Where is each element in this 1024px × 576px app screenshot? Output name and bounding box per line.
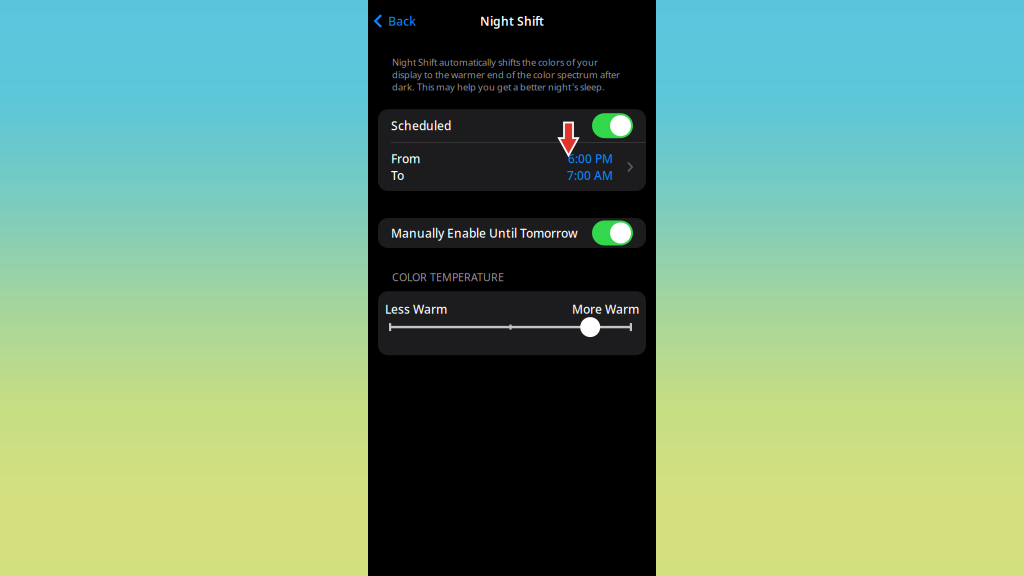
staticText: From: [391, 150, 420, 166]
staticText: Scheduled: [391, 118, 451, 134]
staticText: 7:00 AM: [567, 167, 613, 183]
button[interactable]: Scheduled: [378, 109, 646, 142]
button[interactable]: From: [378, 143, 646, 191]
staticText: COLOR TEMPERATURE: [392, 270, 504, 284]
button[interactable]: Manually Enable Until Tomorrow: [378, 218, 646, 248]
staticText: Manually Enable Until Tomorrow: [391, 225, 578, 241]
staticText: Night Shift: [480, 13, 544, 29]
staticText: Less Warm: [385, 301, 447, 317]
staticText: More Warm: [572, 301, 639, 317]
staticText: Back: [388, 13, 416, 29]
staticText: 6:00 PM: [568, 150, 613, 166]
staticText: To: [391, 167, 404, 183]
button[interactable]: Back: [368, 7, 416, 35]
staticText: Night Shift automatically shifts the col…: [392, 56, 620, 93]
